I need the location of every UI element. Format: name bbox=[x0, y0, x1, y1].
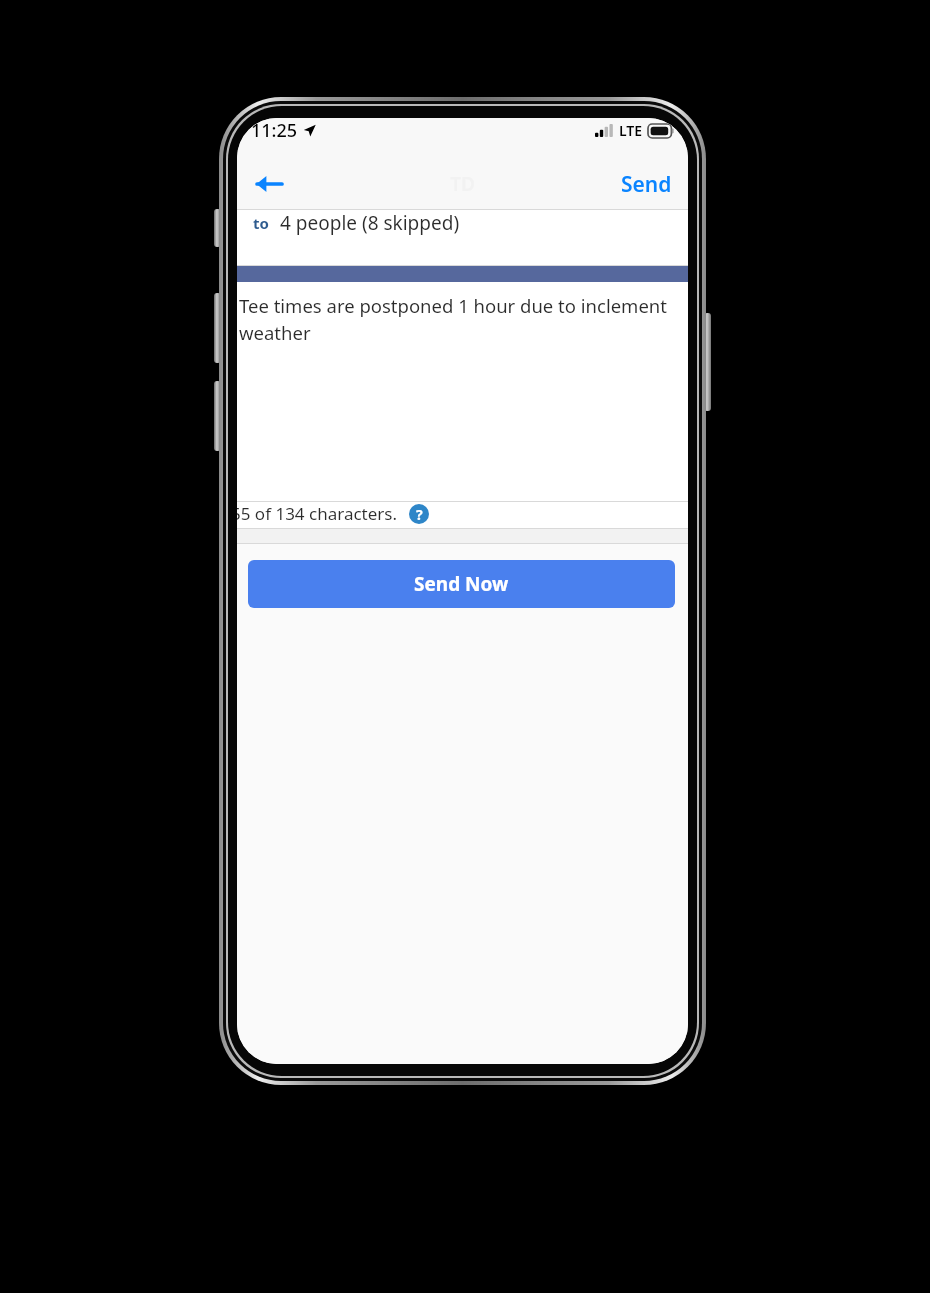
staticText: Tee times are postponed 1 hour due to in… bbox=[239, 293, 670, 346]
button[interactable]: to bbox=[237, 210, 688, 266]
staticText: 11:25 bbox=[251, 118, 298, 143]
button[interactable]: Help bbox=[409, 504, 429, 524]
button[interactable]: Send Now bbox=[248, 560, 675, 608]
button[interactable]: Send bbox=[611, 160, 682, 209]
staticText: Send Now bbox=[414, 571, 509, 597]
staticText: LTE bbox=[619, 121, 643, 140]
staticText: 4 people (8 skipped) bbox=[280, 210, 460, 236]
staticText: to bbox=[253, 213, 269, 233]
button[interactable]: Back bbox=[245, 160, 293, 208]
staticText: 55 of 134 characters. bbox=[237, 502, 398, 525]
staticText: Send bbox=[621, 170, 672, 199]
staticText: ? bbox=[416, 505, 423, 524]
